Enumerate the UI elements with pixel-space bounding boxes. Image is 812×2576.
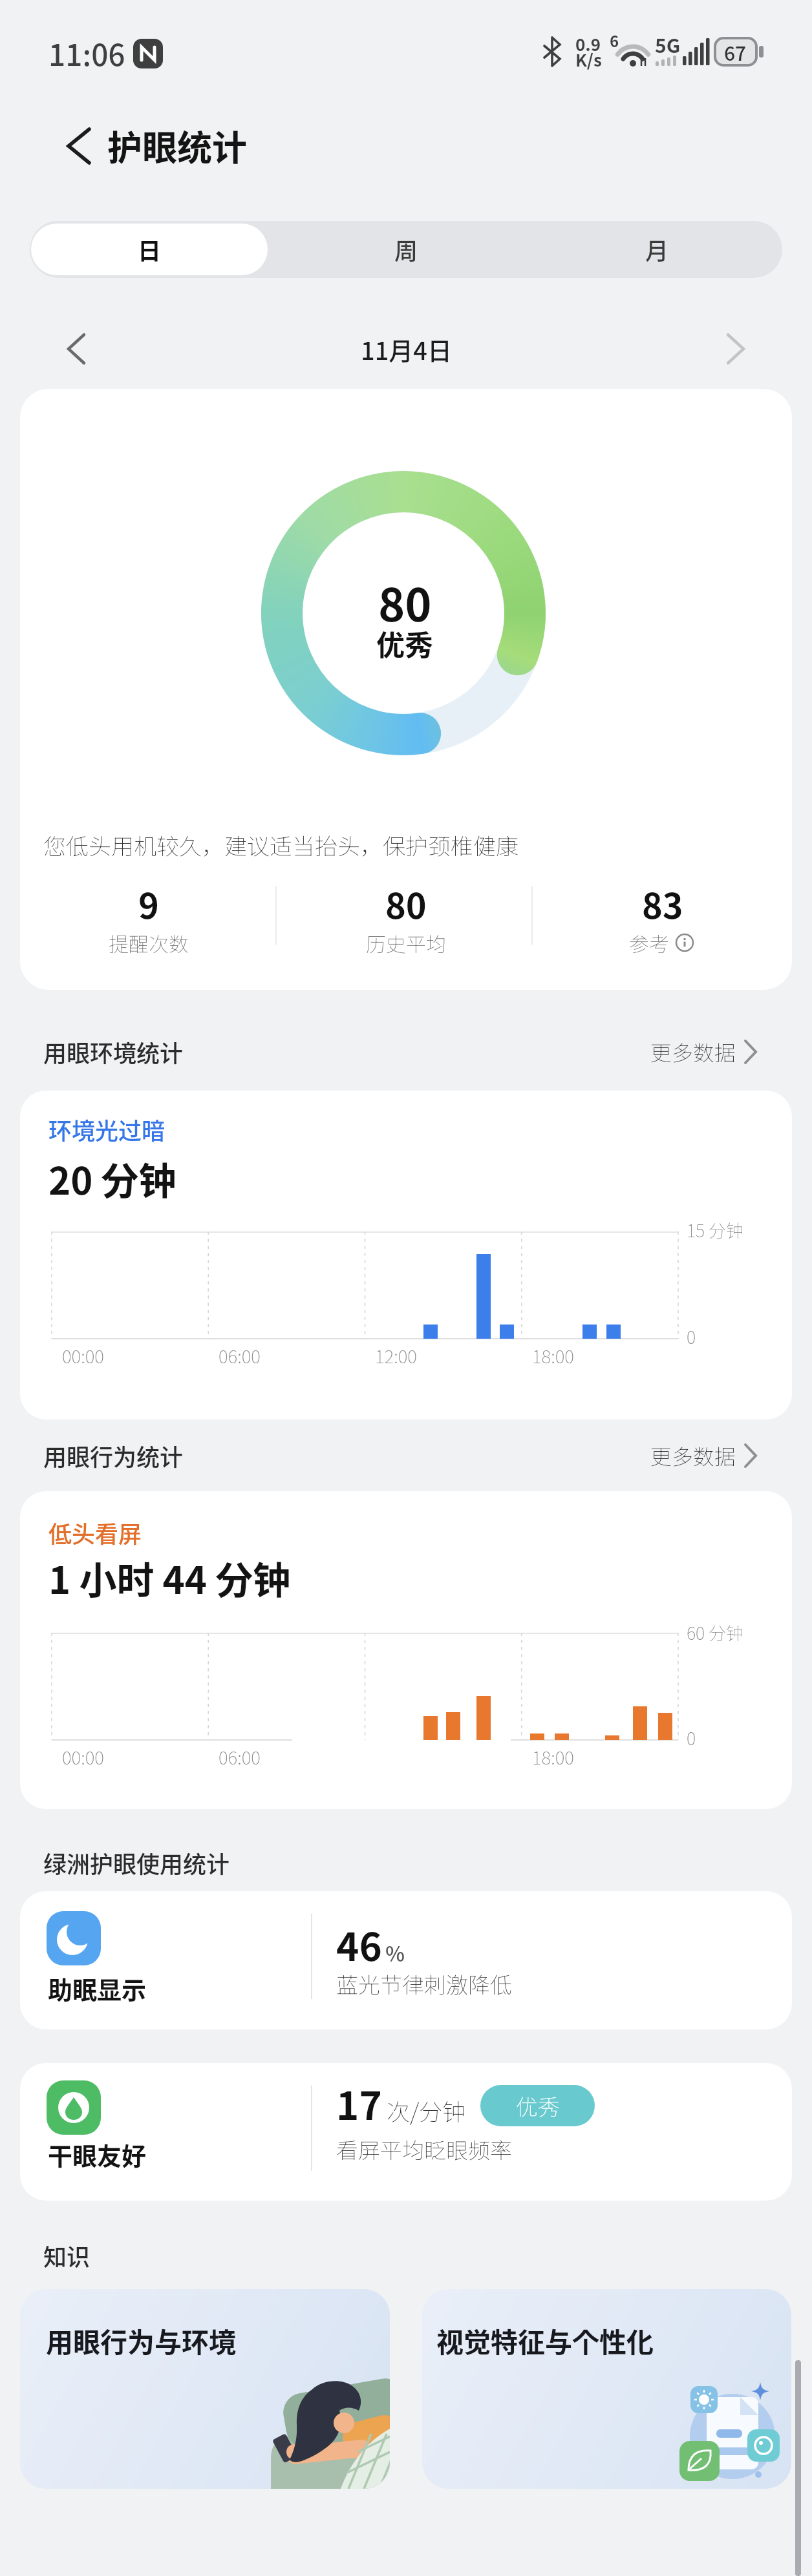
staticText: 日 [138,233,162,266]
staticText: 历史平均 [366,928,446,958]
button[interactable] [715,330,756,368]
button[interactable] [20,1091,792,1419]
button[interactable] [614,1029,767,1074]
staticText: 1 小时 44 分钟 [48,1551,291,1605]
button[interactable]: 周 [281,221,531,278]
staticText: % [385,1938,405,1967]
staticText: 参考 [629,928,669,958]
staticText: 00:00 [62,1744,104,1770]
button[interactable]: 月 [531,221,782,278]
button[interactable] [614,1433,767,1478]
staticText: 15 分钟 [687,1217,744,1242]
staticText: 06:00 [219,1744,261,1770]
staticText: 优秀 [376,623,433,664]
staticText: 用眼行为统计 [43,1439,184,1472]
button[interactable] [20,1891,792,2029]
staticText: 周 [394,233,418,266]
staticText: 知识 [43,2239,91,2272]
staticText: 60 分钟 [687,1620,744,1645]
button[interactable] [20,2063,792,2201]
button[interactable] [56,330,97,368]
button[interactable]: 视觉特征与个性化 [422,2289,791,2489]
staticText: 67 [724,38,747,66]
staticText: 6 [610,29,619,52]
staticText: 月 [645,233,669,266]
staticText: 17 [336,2075,382,2131]
staticText: 83 [642,878,683,928]
staticText: 干眼友好 [48,2137,147,2172]
button[interactable] [30,221,281,278]
staticText: 11月4日 [361,331,452,367]
staticText: 绿洲护眼使用统计 [43,1846,230,1880]
button[interactable] [20,1491,792,1809]
staticText: 11:06 [48,32,125,75]
staticText: 您低头用机较久，建议适当抬头，保护颈椎健康 [43,828,519,861]
staticText: 护眼统计 [107,120,247,171]
staticText: 18:00 [532,1343,574,1369]
staticText: 18:00 [532,1744,574,1770]
staticText: 5G [655,30,681,58]
staticText: 看屏平均眨眼频率 [336,2133,512,2165]
staticText: 蓝光节律刺激降低 [336,1968,512,2000]
staticText: 用眼行为与环境 [46,2321,237,2360]
staticText: 用眼环境统计 [43,1035,184,1069]
staticText: 12:00 [375,1343,417,1369]
staticText: 更多数据 [650,1440,736,1471]
staticText: 优秀 [516,2090,560,2122]
staticText: 低头看屏 [48,1516,142,1549]
staticText: 提醒次数 [109,928,189,958]
staticText: 0.9 [575,32,601,56]
staticText: 助眠显示 [48,1971,147,2006]
staticText: 0 [687,1725,696,1750]
staticText: 0 [687,1324,696,1349]
staticText: 46 [336,1916,382,1972]
staticText: K/s [575,47,602,72]
button[interactable] [57,125,98,167]
staticText: 20 分钟 [48,1151,176,1206]
staticText: 环境光过暗 [48,1113,166,1146]
staticText: 80 [378,569,432,627]
staticText: 80 [385,878,427,928]
staticText: 视觉特征与个性化 [436,2321,654,2360]
staticText: 更多数据 [650,1036,736,1067]
staticText: 00:00 [62,1343,104,1369]
staticText: 06:00 [219,1343,261,1369]
button[interactable]: 用眼行为与环境 [20,2289,390,2489]
staticText: 次/分钟 [387,2093,466,2127]
staticText: 9 [138,878,159,928]
